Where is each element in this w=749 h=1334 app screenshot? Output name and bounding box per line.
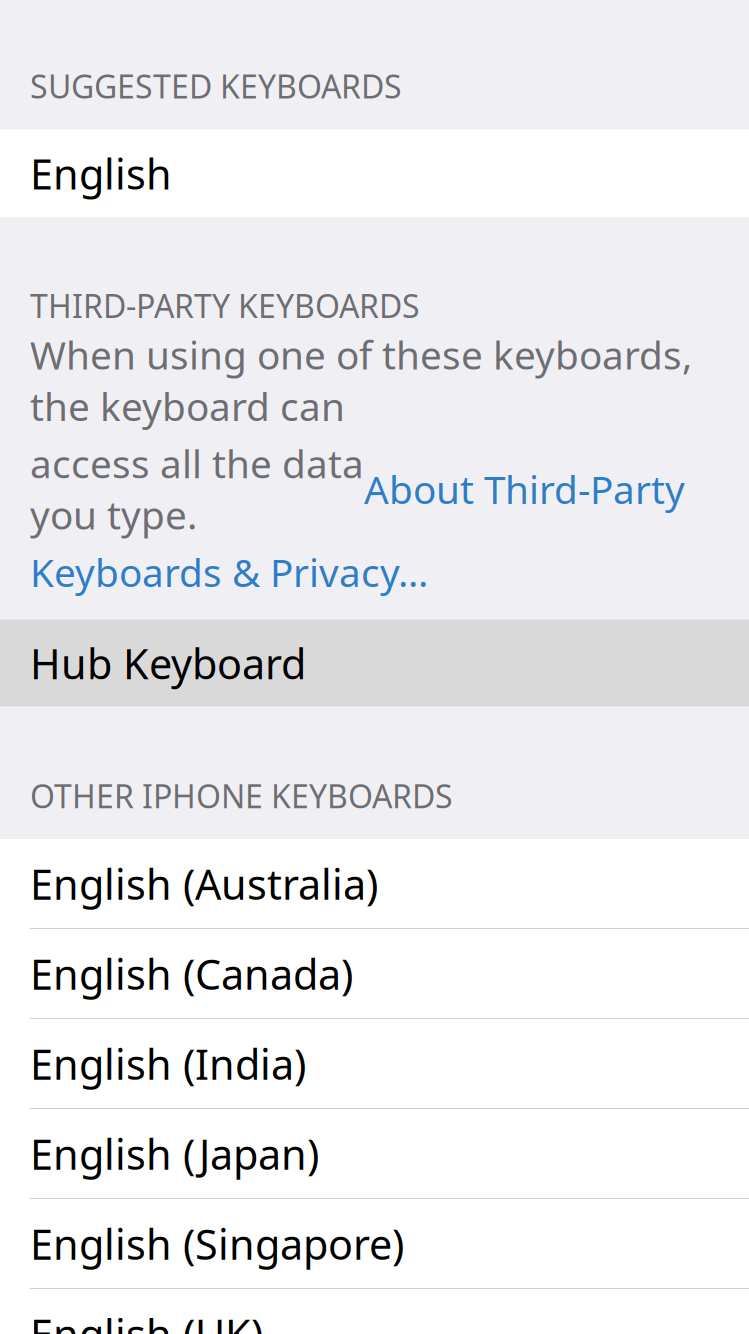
- staticText: Hub Keyboard: [30, 636, 306, 691]
- staticText: English: [30, 146, 172, 201]
- button[interactable]: Hub Keyboard: [0, 620, 749, 707]
- staticText: English (Japan): [30, 1126, 319, 1181]
- staticText: English (India): [30, 1036, 306, 1091]
- staticText: English (Singapore): [30, 1216, 404, 1271]
- staticText: About Third-Party: [364, 463, 685, 514]
- button[interactable]: English (Canada): [0, 929, 749, 1018]
- staticText: THIRD-PARTY KEYBOARDS: [30, 284, 420, 327]
- button[interactable]: Keyboards & Privacy...: [30, 546, 428, 598]
- button[interactable]: English (India): [0, 1019, 749, 1108]
- button[interactable]: English (Australia): [0, 839, 749, 928]
- button[interactable]: About Third-Party: [364, 463, 685, 514]
- button[interactable]: English (UK): [0, 1289, 749, 1334]
- staticText: English (Canada): [30, 946, 353, 1001]
- button[interactable]: English: [0, 129, 749, 217]
- staticText: SUGGESTED KEYBOARDS: [30, 65, 402, 107]
- button[interactable]: English (Japan): [0, 1109, 749, 1198]
- staticText: When using one of these keyboards, the k…: [30, 329, 692, 432]
- staticText: English (Australia): [30, 856, 378, 911]
- staticText: access all the data you type.: [30, 438, 364, 540]
- staticText: Keyboards & Privacy...: [30, 546, 428, 598]
- button[interactable]: English (Singapore): [0, 1199, 749, 1288]
- staticText: English (UK): [30, 1306, 263, 1334]
- staticText: OTHER IPHONE KEYBOARDS: [30, 775, 453, 817]
